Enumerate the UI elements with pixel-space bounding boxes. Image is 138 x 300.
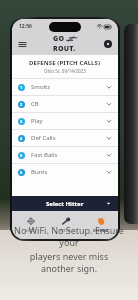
- button[interactable]: 5: [12, 147, 118, 163]
- button[interactable]: 6: [12, 164, 118, 180]
- staticText: Def Calls: [31, 134, 56, 142]
- button[interactable]: HITS: [12, 211, 48, 239]
- staticText: 4: [20, 136, 23, 141]
- staticText: 3: [20, 119, 23, 124]
- staticText: ROUT.: [53, 44, 76, 54]
- button[interactable]: GO: [53, 34, 77, 54]
- staticText: PITCH: [60, 228, 71, 233]
- staticText: DEFENSE (PITCH CALLS): [29, 59, 101, 67]
- staticText: Play: [31, 117, 43, 125]
- button[interactable]: 2: [12, 96, 118, 112]
- staticText: DEFENSE: [93, 228, 109, 233]
- staticText: CB: [31, 100, 39, 108]
- button[interactable]: Select Hitter: [12, 196, 118, 211]
- button[interactable]: PITCH: [48, 211, 83, 239]
- staticText: GO: [53, 34, 65, 44]
- staticText: 5: [20, 153, 23, 158]
- button[interactable]: Settings: [102, 38, 114, 50]
- staticText: 6: [20, 170, 23, 175]
- button[interactable]: 4: [12, 130, 118, 146]
- button[interactable]: 3: [12, 113, 118, 129]
- button[interactable]: Menu: [16, 38, 28, 50]
- staticText: Select Hitter: [46, 200, 84, 208]
- staticText: Fast Balls: [31, 151, 58, 159]
- button[interactable]: DEFENSE: [83, 211, 118, 239]
- staticText: Bunts: [31, 168, 48, 176]
- staticText: No WiFi. No Setup. Ensure your: [12, 224, 126, 248]
- staticText: 12:56: [19, 23, 32, 30]
- staticText: 1: [20, 85, 23, 90]
- staticText: Smoltz: [31, 83, 51, 91]
- button[interactable]: 1: [12, 79, 118, 95]
- staticText: players never miss another sign.: [12, 250, 126, 274]
- staticText: Ohio St. 09/14/2023: [44, 68, 86, 74]
- staticText: HITS: [26, 228, 34, 233]
- staticText: 2: [20, 102, 23, 107]
